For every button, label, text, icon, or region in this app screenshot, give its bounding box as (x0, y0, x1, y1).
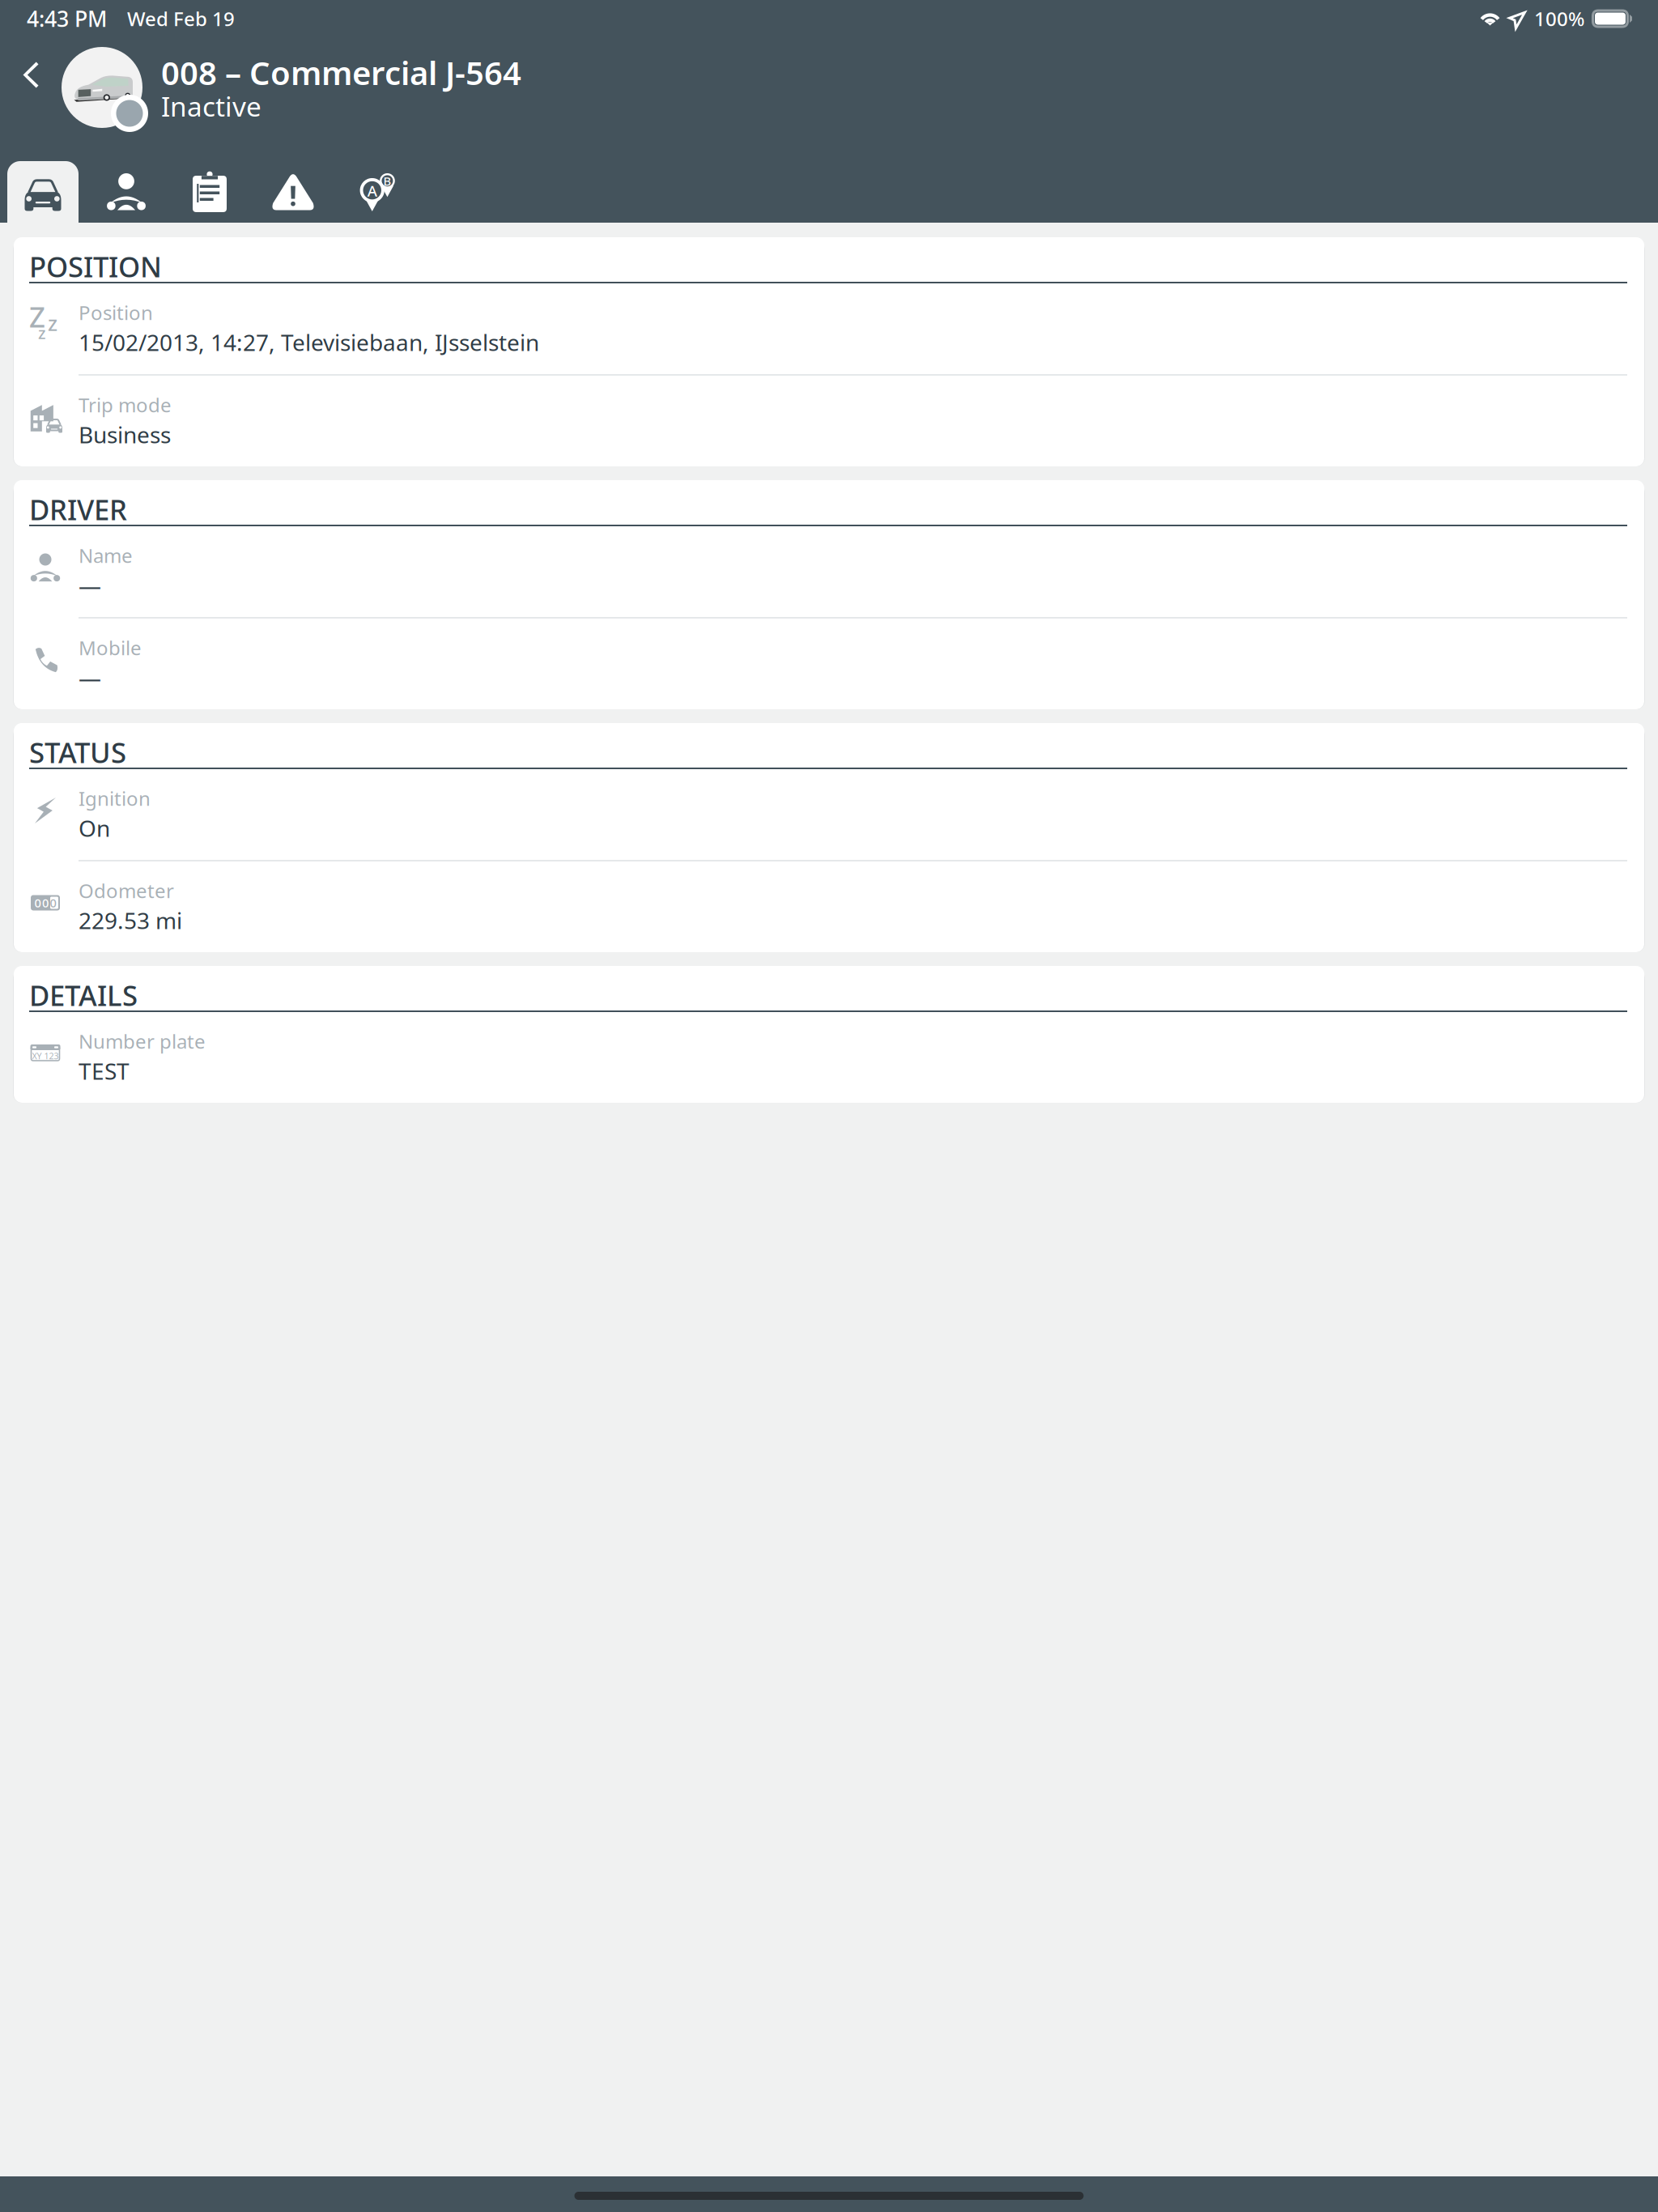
staticText: 008 – Commercial J-564 (161, 51, 521, 94)
staticText: STATUS (29, 734, 126, 771)
staticText: 4:43 PM (27, 4, 107, 33)
button[interactable]: Alerts (257, 161, 329, 223)
staticText: DRIVER (29, 491, 127, 528)
button[interactable]: Route (341, 161, 412, 223)
staticText: On (79, 813, 110, 843)
staticText: 229.53 mi (79, 905, 182, 935)
staticText: Ignition (79, 785, 151, 811)
staticText: XY 123 (32, 1050, 59, 1062)
staticText: — (79, 662, 101, 692)
staticText: — (79, 570, 101, 600)
button[interactable]: Trips (174, 161, 245, 223)
staticText: Position (79, 300, 153, 325)
staticText: TEST (79, 1056, 130, 1086)
staticText: POSITION (29, 248, 162, 285)
button[interactable]: Driver (91, 161, 162, 223)
staticText: Business (79, 419, 171, 450)
staticText: DETAILS (29, 976, 138, 1014)
staticText: 0 (42, 895, 49, 911)
staticText: A (367, 181, 377, 201)
staticText: B (383, 173, 391, 189)
staticText: Name (79, 542, 133, 568)
staticText: 100% (1534, 6, 1584, 32)
staticText: Z (29, 298, 45, 335)
staticText: z (38, 322, 46, 344)
staticText: Inactive (161, 88, 261, 124)
button[interactable]: Vehicle (7, 161, 79, 223)
staticText: Odometer (79, 878, 174, 904)
staticText: Trip mode (79, 392, 172, 418)
button[interactable]: Back (0, 37, 62, 113)
staticText: 0 (50, 895, 56, 911)
staticText: Number plate (79, 1028, 206, 1054)
staticText: z (48, 309, 57, 337)
staticText: 0 (34, 895, 41, 911)
staticText: Wed Feb 19 (127, 6, 235, 32)
staticText: Mobile (79, 635, 142, 661)
staticText: 15/02/2013, 14:27, Televisiebaan, IJssel… (79, 327, 539, 357)
